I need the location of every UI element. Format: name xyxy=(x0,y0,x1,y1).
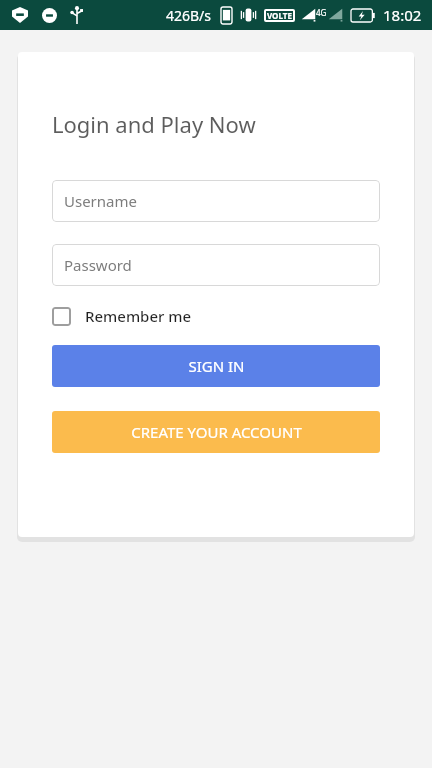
staticText: 18:02 xyxy=(383,5,422,25)
staticText: Username xyxy=(64,191,137,211)
staticText: CREATE YOUR ACCOUNT xyxy=(131,422,302,442)
button[interactable]: Remember me xyxy=(52,304,192,328)
staticText: Remember me xyxy=(85,306,192,326)
staticText: 426B/s xyxy=(166,6,212,25)
staticText: Login and Play Now xyxy=(52,109,256,139)
button[interactable]: Username xyxy=(52,180,380,222)
staticText: SIGN IN xyxy=(188,356,245,376)
button[interactable]: SIGN IN xyxy=(52,345,380,387)
button[interactable]: CREATE YOUR ACCOUNT xyxy=(52,411,380,453)
button[interactable]: Password xyxy=(52,244,380,286)
staticText: Password xyxy=(64,255,132,275)
staticText: VOLTE xyxy=(267,10,292,21)
staticText: 4G xyxy=(316,7,327,18)
